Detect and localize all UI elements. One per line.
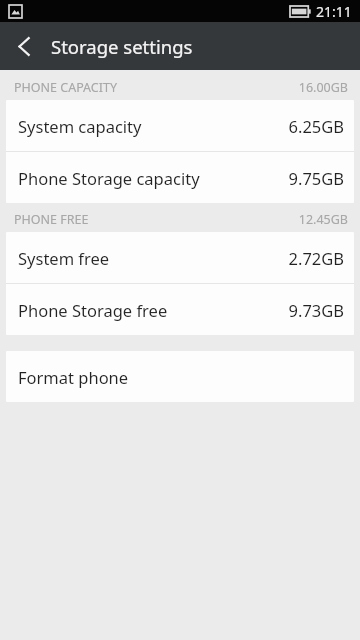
staticText: Phone Storage capacity xyxy=(18,167,200,189)
staticText: 2.72GB xyxy=(288,247,344,269)
staticText: 21:11 xyxy=(316,2,352,21)
button[interactable]: System free xyxy=(6,232,354,283)
staticText: PHONE FREE xyxy=(14,211,89,228)
staticText: 9.73GB xyxy=(288,299,344,321)
button[interactable]: System capacity xyxy=(6,100,354,151)
button[interactable]: Back xyxy=(0,22,48,70)
staticText: 6.25GB xyxy=(288,115,344,137)
staticText: Storage settings xyxy=(51,34,193,59)
button[interactable]: Phone Storage free xyxy=(6,284,354,335)
button[interactable]: Format phone xyxy=(6,351,354,402)
staticText: 9.75GB xyxy=(288,167,344,189)
staticText: PHONE CAPACITY xyxy=(14,79,118,96)
staticText: 16.00GB xyxy=(298,79,348,96)
staticText: 12.45GB xyxy=(298,211,348,228)
staticText: System free xyxy=(18,247,110,269)
button[interactable]: Phone Storage capacity xyxy=(6,152,354,203)
staticText: System capacity xyxy=(18,115,142,137)
staticText: Format phone xyxy=(18,366,129,388)
staticText: Phone Storage free xyxy=(18,299,168,321)
